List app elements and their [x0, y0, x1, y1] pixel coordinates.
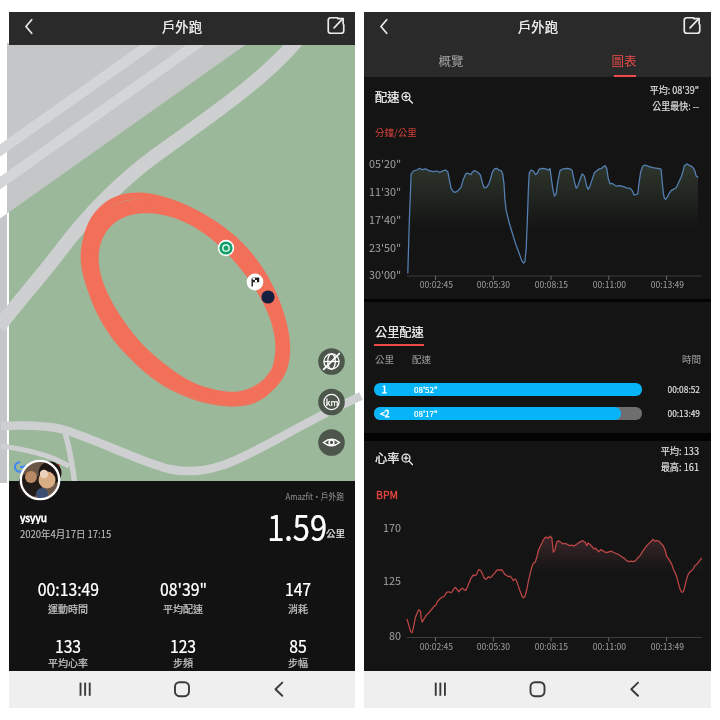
button[interactable]: Route map — [9, 45, 355, 481]
staticText: 23'50" — [369, 239, 401, 255]
staticText: 配速 — [412, 352, 432, 365]
staticText: 80 — [388, 627, 401, 643]
staticText: 平均: 08'39" — [649, 82, 699, 96]
button[interactable]: Home — [516, 671, 560, 707]
staticText: 運動時間 — [48, 601, 88, 615]
staticText: 戶外跑 — [518, 17, 558, 36]
staticText: 00:08:15 — [535, 278, 568, 291]
button[interactable]: Back — [257, 671, 301, 707]
staticText: 00:11:00 — [593, 640, 626, 653]
staticText: 00:13:49 — [667, 406, 700, 419]
staticText: 概覽 — [438, 51, 464, 69]
staticText: 170 — [382, 519, 401, 535]
button[interactable]: Share — [313, 12, 355, 45]
staticText: 00:13:49 — [651, 278, 684, 291]
staticText: 戶外跑 — [162, 17, 202, 36]
button[interactable] — [374, 383, 642, 396]
button[interactable]: Recent apps — [418, 671, 462, 707]
button[interactable]: Back — [613, 671, 657, 707]
staticText: 08'17" — [414, 408, 438, 419]
staticText: <2 — [380, 407, 390, 419]
staticText: Amazfit·戶外跑 — [285, 490, 344, 503]
staticText: BPM — [376, 487, 399, 502]
staticText: 17'40" — [369, 211, 401, 227]
staticText: 平均: 133 — [660, 443, 699, 457]
staticText: 85 — [289, 633, 307, 658]
staticText: 08'39" — [160, 576, 207, 601]
staticText: 147 — [284, 576, 311, 601]
staticText: 2020年4月17日 17:15 — [20, 526, 112, 540]
staticText: 00:08:15 — [535, 640, 568, 653]
staticText: 平均配速 — [163, 601, 203, 615]
staticText: 消耗 — [288, 601, 308, 615]
staticText: 平均心率 — [48, 655, 88, 669]
staticText: 步頻 — [173, 655, 193, 669]
staticText: 最高: 161 — [660, 459, 699, 473]
button[interactable] — [538, 45, 712, 77]
staticText: 30'00" — [369, 266, 401, 282]
button[interactable] — [364, 45, 538, 77]
button[interactable]: Back — [364, 12, 406, 45]
staticText: 00:13:49 — [651, 640, 684, 653]
staticText: 00:13:49 — [37, 576, 99, 601]
staticText: 公里 — [375, 352, 395, 365]
staticText: 1.59 — [266, 500, 327, 550]
staticText: 1 — [382, 383, 387, 395]
button[interactable]: Recent apps — [63, 671, 107, 707]
staticText: 133 — [54, 633, 81, 658]
staticText: 125 — [382, 572, 401, 588]
staticText: 時間 — [681, 352, 701, 365]
staticText: 公里 — [325, 526, 345, 539]
staticText: 公里配速 — [375, 323, 424, 340]
staticText: km — [325, 396, 339, 409]
staticText: 心率 — [375, 449, 400, 466]
staticText: 00:08:52 — [667, 382, 700, 395]
staticText: 00:02:45 — [420, 640, 453, 653]
staticText: 08'52" — [414, 384, 438, 395]
button[interactable]: Back — [9, 12, 51, 45]
button[interactable] — [374, 407, 642, 420]
staticText: 11'30" — [369, 183, 401, 199]
staticText: 配速 — [375, 88, 400, 105]
staticText: 00:11:00 — [593, 278, 626, 291]
staticText: 00:05:30 — [477, 278, 510, 291]
staticText: 分鐘/公里 — [375, 125, 417, 138]
button[interactable]: Home — [160, 671, 204, 707]
staticText: ysyyu — [20, 510, 47, 524]
staticText: 05'20" — [369, 155, 401, 171]
staticText: 123 — [169, 633, 196, 658]
button[interactable]: Share — [669, 12, 711, 45]
staticText: 步幅 — [288, 655, 308, 669]
staticText: 00:02:45 — [420, 278, 453, 291]
staticText: 00:05:30 — [477, 640, 510, 653]
staticText: 公里最快: -- — [652, 98, 699, 112]
staticText: 圖表 — [611, 51, 637, 69]
